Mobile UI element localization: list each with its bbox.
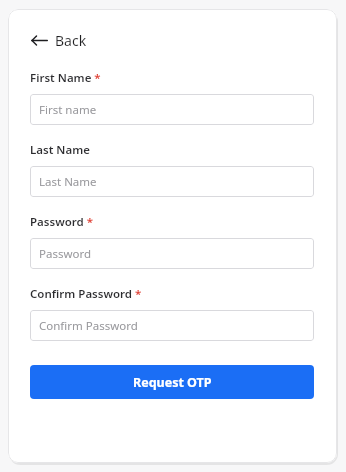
- staticText: First Name *: [30, 70, 101, 86]
- staticText: Password *: [30, 214, 94, 230]
- staticText: Back: [55, 31, 87, 50]
- button[interactable]: First name: [30, 94, 314, 125]
- staticText: Request OTP: [133, 374, 212, 391]
- staticText: Confirm Password *: [30, 286, 142, 302]
- button[interactable]: Confirm Password: [30, 310, 314, 341]
- button[interactable]: Last Name: [30, 166, 314, 197]
- button[interactable]: Back: [30, 29, 88, 52]
- staticText: First name: [39, 102, 97, 118]
- staticText: Confirm Password: [39, 318, 138, 334]
- staticText: Last Name: [39, 174, 97, 190]
- staticText: Last Name: [30, 142, 90, 158]
- staticText: Password: [39, 246, 92, 262]
- other: Back: [31, 33, 48, 48]
- button[interactable]: Request OTP: [30, 365, 314, 399]
- button[interactable]: Password: [30, 238, 314, 269]
